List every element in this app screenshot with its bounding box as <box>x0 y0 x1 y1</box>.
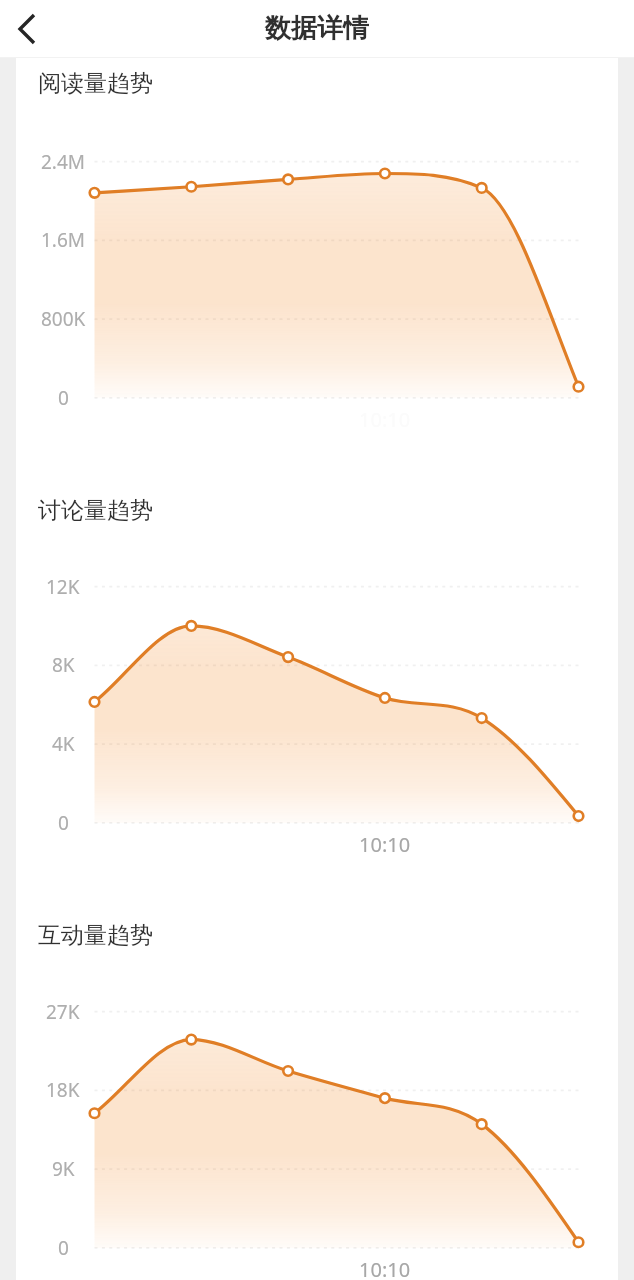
staticText: 阅读量趋势 <box>38 69 153 98</box>
staticText: 8K <box>52 652 75 678</box>
staticText: 12K <box>46 574 80 600</box>
staticText: 800K <box>41 306 86 332</box>
staticText: 18K <box>46 1077 80 1103</box>
staticText: 2.4M <box>41 149 86 175</box>
staticText: 1.6M <box>41 227 86 253</box>
button[interactable]: Back <box>0 1 56 57</box>
staticText: 10:10 <box>359 1256 411 1280</box>
staticText: 27K <box>46 999 80 1025</box>
staticText: 4K <box>52 731 75 757</box>
staticText: 讨论量趋势 <box>38 496 153 525</box>
staticText: 9K <box>52 1156 75 1182</box>
staticText: 0 <box>58 810 69 836</box>
staticText: 数据详情 <box>265 12 369 45</box>
staticText: 0 <box>58 385 69 411</box>
staticText: 0 <box>58 1235 69 1261</box>
staticText: 互动量趋势 <box>38 921 153 950</box>
staticText: 10:10 <box>359 831 411 858</box>
